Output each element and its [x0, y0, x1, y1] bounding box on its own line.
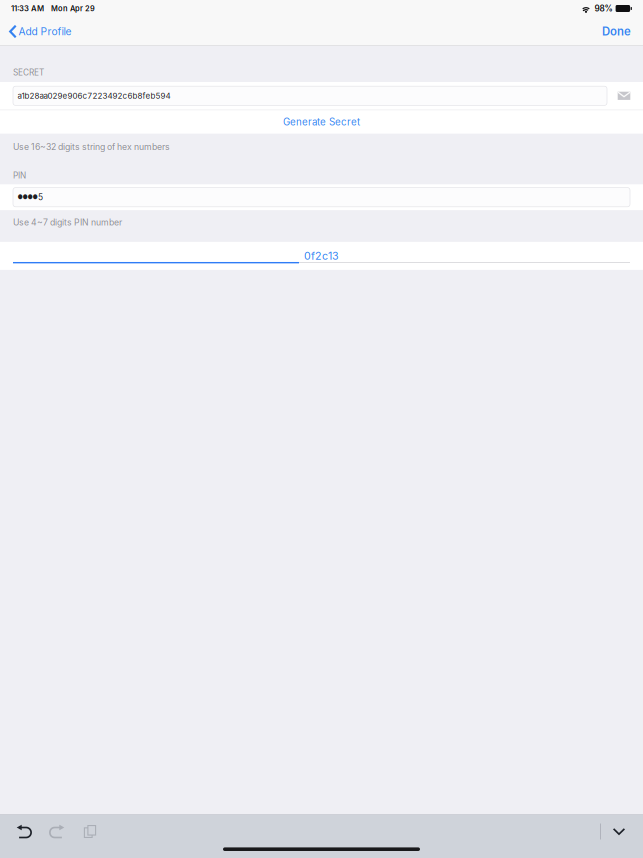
staticText: SECRET [13, 67, 44, 77]
button[interactable]: Scan secret [613, 86, 635, 106]
staticText: Mon Apr 29 [51, 4, 95, 13]
staticText: PIN [13, 170, 26, 180]
button[interactable]: Add Profile [0, 17, 79, 46]
staticText: a1b28aa029e906c7223492c6b8feb594 [17, 91, 170, 101]
button[interactable]: Hide keyboard [601, 818, 637, 844]
staticText: 11:33 AM [11, 4, 44, 13]
staticText: ●●●● [17, 194, 37, 201]
staticText: Generate Secret [283, 116, 360, 128]
button[interactable]: Paste [73, 818, 106, 844]
staticText: 0f2c13 [304, 249, 339, 262]
staticText: Done [602, 25, 631, 38]
staticText: 5 [38, 192, 43, 202]
staticText: Use 4~7 digits PIN number [13, 217, 122, 227]
button[interactable]: Undo [7, 818, 40, 844]
staticText: 98% [594, 3, 612, 13]
staticText: Add Profile [18, 25, 71, 38]
staticText: Use 16~32 digits string of hex numbers [13, 142, 170, 152]
button[interactable]: 0f2c13 [0, 245, 643, 266]
button[interactable]: Generate Secret [0, 110, 643, 134]
button[interactable]: Redo [40, 818, 73, 844]
button[interactable]: Done [590, 17, 643, 46]
